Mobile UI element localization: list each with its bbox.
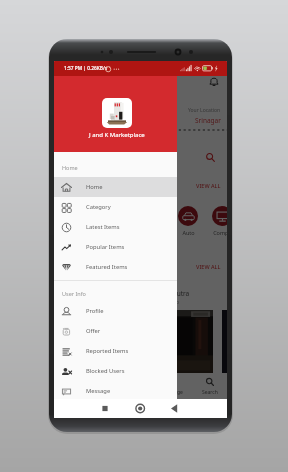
- button[interactable]: Home: [79, 377, 113, 399]
- button[interactable]: Compu: [212, 206, 227, 236]
- staticText: Profile: [86, 307, 104, 315]
- button[interactable]: Latest Items: [54, 217, 177, 237]
- staticText: Blocked Users: [86, 367, 125, 375]
- staticText: Offer: [86, 327, 101, 335]
- staticText: Message: [86, 387, 111, 395]
- button[interactable]: VIEW ALL: [196, 182, 221, 189]
- staticText: Popular Items: [86, 243, 125, 251]
- staticText: Items logo: [154, 299, 180, 306]
- staticText: Search: [202, 389, 218, 396]
- staticText: Home: [89, 389, 104, 396]
- staticText: Message: [162, 389, 183, 396]
- staticText: Category: [86, 203, 111, 211]
- staticText: Home: [62, 164, 78, 171]
- button[interactable]: Message: [155, 377, 189, 399]
- button[interactable]: Search: [193, 377, 227, 399]
- staticText: Latest Items: [86, 223, 120, 231]
- button[interactable]: Featured Items: [54, 257, 177, 277]
- button[interactable]: Profile: [54, 301, 177, 321]
- button[interactable]: VIEW ALL: [196, 263, 221, 270]
- button[interactable]: Reported Items: [54, 341, 177, 361]
- button[interactable]: Notifications: [204, 72, 224, 92]
- button[interactable]: Search: [205, 152, 216, 163]
- staticText: J and K Marketplace: [89, 131, 145, 139]
- staticText: Auto: [182, 229, 195, 236]
- button[interactable]: Message: [54, 381, 177, 401]
- staticText: Srinagar: [195, 116, 221, 125]
- button[interactable]: Popular Items: [54, 237, 177, 257]
- staticText: 1:57 PM | 0.26KB/s: [64, 65, 108, 72]
- button[interactable]: Home: [54, 177, 177, 197]
- button[interactable]: Blocked Users: [54, 361, 177, 381]
- staticText: Home: [86, 183, 103, 191]
- staticText: User Info: [62, 290, 86, 297]
- staticText: Kama Sutra: [154, 289, 190, 298]
- button[interactable]: [140, 310, 213, 373]
- staticText: Compu: [213, 229, 227, 236]
- button[interactable]: Category: [54, 197, 177, 217]
- button[interactable]: Auto: [178, 206, 198, 236]
- staticText: Your Location: [188, 107, 221, 114]
- staticText: Reported Items: [86, 347, 129, 355]
- staticText: Featured Items: [86, 263, 128, 271]
- button[interactable]: Offer: [54, 321, 177, 341]
- button[interactable]: Home: [76, 206, 96, 236]
- button[interactable]: Book: [110, 206, 130, 236]
